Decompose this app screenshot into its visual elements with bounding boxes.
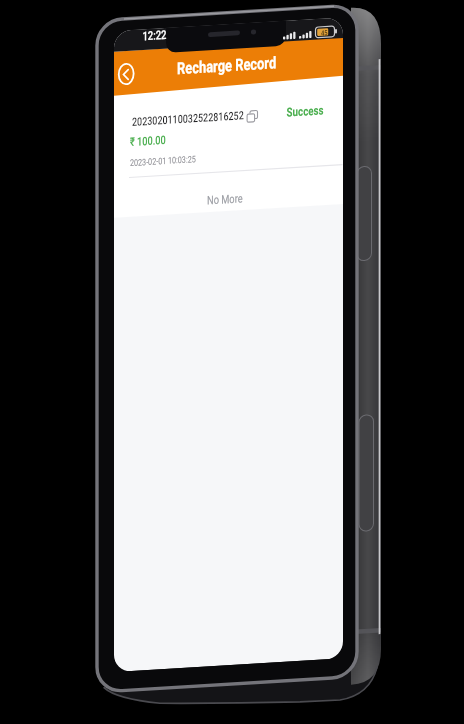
- staticText: 2023-02-01 10:03:25: [124, 122, 202, 199]
- button[interactable]: [238, 98, 266, 126]
- staticText: 2023020110032522816252: [125, 55, 251, 181]
- staticText: Success: [279, 85, 331, 137]
- staticText: 45: [316, 25, 332, 41]
- staticText: Recharge Record: [168, 6, 286, 125]
- button[interactable]: [106, 51, 146, 91]
- button[interactable]: [71, 0, 386, 287]
- staticText: No More: [200, 174, 250, 224]
- staticText: ₹ 100.00: [123, 116, 173, 166]
- staticText: 12:22: [135, 16, 174, 55]
